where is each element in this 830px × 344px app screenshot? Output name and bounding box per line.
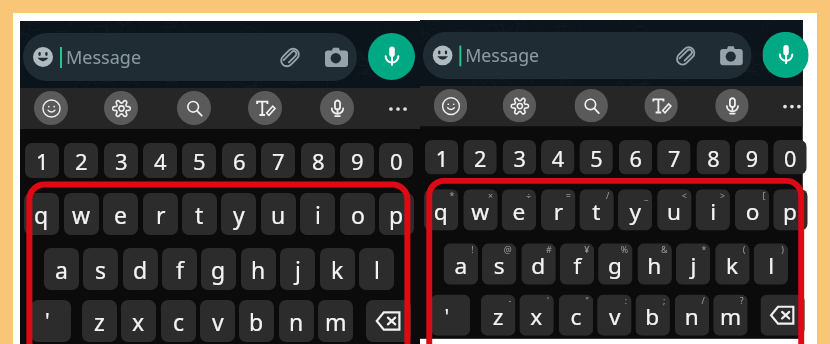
button[interactable]: i: [300, 193, 335, 235]
button[interactable]: Message: [423, 32, 752, 79]
button[interactable]: v: [200, 300, 235, 342]
button[interactable]: 7: [657, 140, 691, 174]
button[interactable]: k: [715, 243, 750, 285]
button[interactable]: 0: [379, 143, 413, 178]
button[interactable]: q: [424, 189, 458, 230]
button[interactable]: 5: [182, 143, 216, 178]
button[interactable]: f: [162, 248, 197, 290]
button[interactable]: Camera: [325, 47, 348, 67]
button[interactable]: l: [359, 248, 394, 290]
button[interactable]: z: [82, 300, 117, 342]
button[interactable]: s: [482, 243, 516, 285]
button[interactable]: 5: [579, 140, 613, 174]
button[interactable]: Emoji: [434, 89, 467, 122]
button[interactable]: Settings: [503, 89, 536, 122]
button[interactable]: j: [280, 248, 315, 290]
button[interactable]: a: [44, 248, 79, 290]
button[interactable]: Search: [177, 91, 211, 125]
button[interactable]: More options: [382, 93, 414, 125]
staticText: o: [351, 199, 365, 230]
button[interactable]: w: [64, 193, 99, 235]
button[interactable]: 3: [503, 140, 536, 174]
button[interactable]: Voice input: [320, 91, 354, 125]
staticText: k: [331, 254, 344, 285]
button[interactable]: Backspace: [760, 294, 805, 336]
button[interactable]: i: [695, 189, 730, 230]
button[interactable]: Backspace: [366, 300, 411, 342]
button[interactable]: 0: [773, 140, 807, 174]
button[interactable]: x: [121, 300, 156, 342]
button[interactable]: d: [123, 248, 158, 290]
button[interactable]: 1: [425, 140, 458, 174]
button[interactable]: k: [320, 248, 355, 290]
button[interactable]: u: [657, 189, 691, 230]
button[interactable]: y: [221, 193, 256, 235]
button[interactable]: Message: [23, 33, 357, 81]
button[interactable]: y: [618, 189, 652, 230]
button[interactable]: g: [598, 243, 632, 285]
button[interactable]: t: [182, 193, 217, 235]
button[interactable]: Attach: [675, 46, 696, 66]
button[interactable]: d: [521, 243, 556, 285]
button[interactable]: m: [713, 294, 748, 336]
button[interactable]: b: [239, 300, 274, 342]
button[interactable]: h: [241, 248, 276, 290]
button[interactable]: g: [201, 248, 236, 290]
button[interactable]: c: [161, 300, 196, 342]
button[interactable]: 8: [696, 140, 730, 174]
button[interactable]: Record voice message: [368, 33, 415, 80]
button[interactable]: Emoji: [34, 91, 68, 125]
button[interactable]: 9: [340, 143, 374, 178]
button[interactable]: a: [444, 243, 478, 285]
button[interactable]: Attach: [279, 47, 301, 68]
staticText: ]: [801, 189, 804, 201]
button[interactable]: 9: [735, 140, 768, 174]
button[interactable]: h: [637, 243, 672, 285]
button[interactable]: o: [340, 193, 375, 235]
button[interactable]: w: [463, 189, 498, 230]
button[interactable]: t: [579, 189, 614, 230]
button[interactable]: n: [675, 294, 709, 336]
button[interactable]: p: [379, 193, 414, 235]
button[interactable]: e: [502, 189, 536, 230]
button[interactable]: v: [597, 294, 631, 336]
button[interactable]: 2: [64, 143, 98, 178]
button[interactable]: Search: [574, 89, 608, 122]
button[interactable]: More options: [776, 91, 808, 122]
button[interactable]: 6: [619, 140, 652, 174]
button[interactable]: q: [24, 193, 59, 235]
button[interactable]: b: [635, 294, 670, 336]
button[interactable]: c: [559, 294, 593, 336]
button[interactable]: ': [31, 300, 71, 342]
button[interactable]: Text edit: [248, 91, 282, 125]
button[interactable]: o: [735, 189, 769, 230]
button[interactable]: 4: [143, 143, 177, 178]
staticText: g: [608, 249, 623, 280]
button[interactable]: Settings: [104, 91, 138, 125]
button[interactable]: 4: [541, 140, 574, 174]
button[interactable]: m: [318, 300, 353, 342]
button[interactable]: s: [83, 248, 118, 290]
button[interactable]: u: [261, 193, 296, 235]
button[interactable]: 8: [301, 143, 335, 178]
button[interactable]: z: [481, 294, 515, 336]
button[interactable]: Record voice message: [762, 32, 809, 78]
button[interactable]: Camera: [720, 46, 743, 65]
button[interactable]: e: [103, 193, 138, 235]
button[interactable]: ': [431, 294, 470, 336]
button[interactable]: 7: [261, 143, 295, 178]
button[interactable]: 1: [25, 143, 59, 178]
button[interactable]: l: [754, 243, 788, 285]
button[interactable]: 2: [463, 140, 497, 174]
button[interactable]: j: [676, 243, 710, 285]
button[interactable]: Text edit: [644, 89, 678, 122]
button[interactable]: r: [143, 193, 178, 235]
button[interactable]: f: [560, 243, 594, 285]
button[interactable]: 6: [222, 143, 256, 178]
button[interactable]: n: [279, 300, 314, 342]
button[interactable]: x: [519, 294, 554, 336]
button[interactable]: p: [773, 189, 808, 230]
button[interactable]: 3: [104, 143, 138, 178]
button[interactable]: r: [541, 189, 575, 230]
button[interactable]: Voice input: [715, 89, 749, 122]
